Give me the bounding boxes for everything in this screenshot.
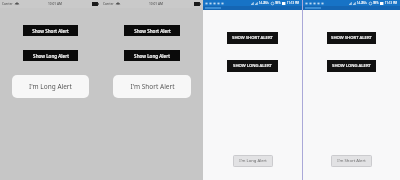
staticText: SHOW LONG ALERT [233,63,272,69]
staticText: 10:01 AM [48,2,63,6]
staticText: 14.2K/s [357,1,367,5]
button[interactable]: Show Short Alert [23,25,78,36]
button[interactable]: SHOW LONG ALERT [227,60,278,72]
staticText: I'm Short Alert [337,158,366,164]
staticText: 98% [373,1,379,5]
staticText: Show Short Alert [134,28,171,34]
button[interactable]: I'm Long Alert [12,75,89,98]
button[interactable]: Show Short Alert [124,25,180,36]
staticText: SHOW SHORT ALERT [331,35,372,41]
button[interactable]: Show Long Alert [23,50,78,61]
staticText: Show Long Alert [33,53,69,59]
staticText: 10:01 AM [149,2,164,6]
staticText: SHOW LONG ALERT [332,63,371,69]
staticText: Show Short Alert [32,28,69,34]
button[interactable]: I'm Short Alert [113,75,191,98]
staticText: SHOW SHORT ALERT [232,35,273,41]
button[interactable]: SHOW SHORT ALERT [227,32,278,44]
staticText: Carrier [2,2,13,6]
button[interactable]: Show Long Alert [124,50,180,61]
button[interactable]: I'm Long Alert [239,158,267,164]
button[interactable]: SHOW SHORT ALERT [327,32,376,44]
staticText: Carrier [103,2,114,6]
staticText: I'm Short Alert [130,82,175,91]
staticText: I'm Long Alert [239,158,267,164]
staticText: 11:13 PM [385,1,398,5]
staticText: 11:13 PM [287,1,300,5]
button[interactable]: I'm Short Alert [337,158,366,164]
staticText: 14.2K/s [259,1,269,5]
staticText: Show Long Alert [134,53,170,59]
staticText: I'm Long Alert [29,82,72,91]
staticText: 98% [275,1,281,5]
button[interactable]: SHOW LONG ALERT [327,60,376,72]
